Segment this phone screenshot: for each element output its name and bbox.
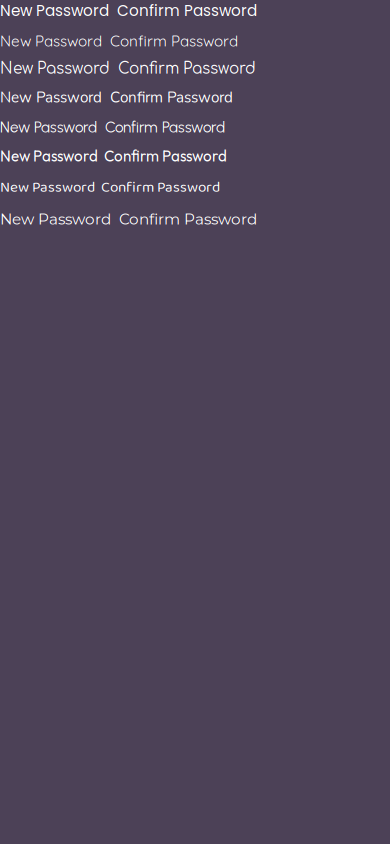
staticText: New Password Confirm Password <box>0 118 225 136</box>
staticText: New Password Confirm Password <box>0 31 238 50</box>
staticText: New Password Confirm Password <box>0 0 257 21</box>
staticText: New Password Confirm Password <box>0 60 256 77</box>
staticText: New Password Confirm Password <box>0 175 220 200</box>
staticText: New Password Confirm Password <box>0 146 227 165</box>
staticText: New Password Confirm Password <box>0 87 233 108</box>
staticText: New Password Confirm Password <box>0 210 257 228</box>
